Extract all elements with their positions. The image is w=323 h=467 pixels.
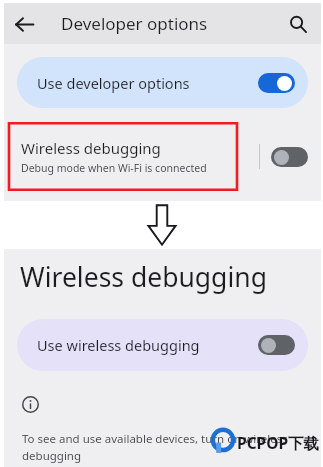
- button[interactable]: Wireless debugging: [4, 122, 321, 191]
- other: Info: [22, 396, 39, 413]
- staticText: PCPOP下载: [237, 432, 320, 453]
- button[interactable]: Back: [4, 4, 44, 44]
- button[interactable]: Use wireless debugging: [17, 319, 308, 371]
- button[interactable]: Search: [278, 4, 318, 44]
- staticText: Use wireless debugging: [37, 335, 200, 355]
- button[interactable]: Use developer options: [17, 57, 308, 108]
- button[interactable]: Toggle off: [271, 147, 308, 167]
- staticText: Wireless debugging: [20, 259, 267, 295]
- staticText: Wireless debugging: [21, 138, 161, 158]
- button[interactable]: Toggle on: [258, 73, 295, 93]
- button[interactable]: Toggle off: [258, 335, 295, 355]
- staticText: Developer options: [61, 12, 208, 35]
- staticText: Use developer options: [37, 73, 190, 93]
- staticText: Debug mode when Wi-Fi is connected: [21, 161, 207, 175]
- staticText: To see and use available devices, turn o…: [22, 431, 288, 463]
